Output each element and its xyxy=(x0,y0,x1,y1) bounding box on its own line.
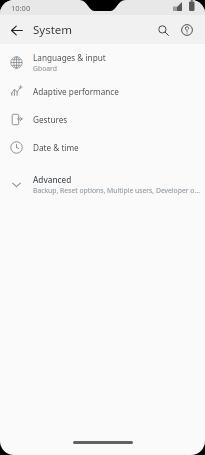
button[interactable]: Languages & input xyxy=(0,47,205,77)
staticText: Backup, Reset options, Multiple users, D… xyxy=(33,186,200,195)
staticText: Languages & input xyxy=(33,52,106,63)
button[interactable]: Date & time xyxy=(0,133,205,161)
staticText: System xyxy=(33,22,73,38)
button[interactable]: Search xyxy=(151,18,175,42)
staticText: Date & time xyxy=(33,142,79,153)
button[interactable]: Gestures xyxy=(0,105,205,133)
staticText: Gestures xyxy=(33,114,68,125)
staticText: 10:00 xyxy=(11,3,31,13)
button[interactable]: Home xyxy=(73,441,133,444)
staticText: Gboard xyxy=(33,64,57,73)
button[interactable]: Help xyxy=(175,18,199,42)
staticText: Adaptive performance xyxy=(33,86,119,97)
button[interactable]: Advanced xyxy=(0,169,205,199)
staticText: Advanced xyxy=(33,174,72,185)
button[interactable]: Adaptive performance xyxy=(0,77,205,105)
button[interactable]: Back xyxy=(5,19,27,41)
